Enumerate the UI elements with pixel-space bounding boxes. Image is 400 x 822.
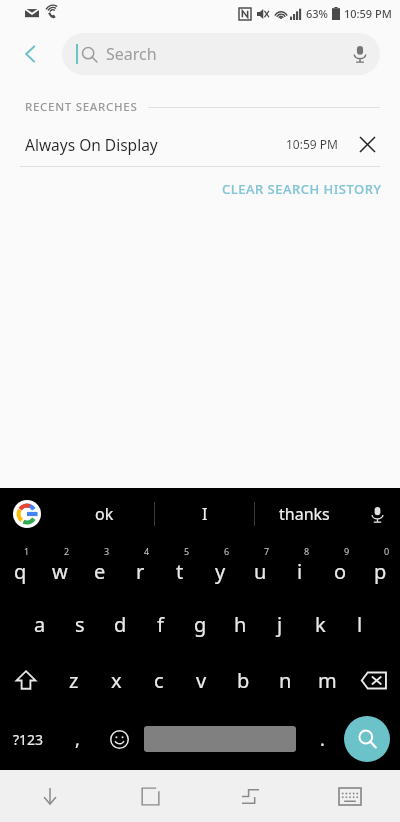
- button[interactable]: Emoji: [98, 708, 140, 770]
- staticText: 2: [64, 545, 70, 557]
- staticText: l: [357, 611, 363, 638]
- button[interactable]: 6: [200, 540, 240, 596]
- button[interactable]: Backspace: [348, 652, 400, 708]
- staticText: q: [14, 558, 27, 585]
- button[interactable]: l: [340, 596, 380, 652]
- button[interactable]: ?123: [0, 708, 56, 770]
- staticText: u: [254, 558, 267, 585]
- button[interactable]: Hide keyboard: [0, 770, 100, 822]
- button[interactable]: 4: [120, 540, 160, 596]
- button[interactable]: CLEAR SEARCH HISTORY: [204, 172, 400, 206]
- button[interactable]: 2: [40, 540, 80, 596]
- staticText: r: [136, 558, 145, 585]
- button[interactable]: Recents: [200, 770, 300, 822]
- button[interactable]: .: [300, 708, 344, 770]
- button[interactable]: h: [220, 596, 260, 652]
- button[interactable]: d: [100, 596, 140, 652]
- staticText: 8: [304, 545, 310, 557]
- button[interactable]: Google: [0, 488, 54, 540]
- button[interactable]: Voice input: [354, 488, 400, 540]
- staticText: RECENT SEARCHES: [25, 99, 138, 115]
- button[interactable]: Remove: [352, 129, 382, 159]
- button[interactable]: c: [138, 652, 180, 708]
- button[interactable]: 9: [320, 540, 360, 596]
- button[interactable]: Back: [0, 26, 62, 82]
- button[interactable]: 0: [360, 540, 400, 596]
- staticText: e: [94, 558, 106, 585]
- staticText: d: [114, 611, 127, 638]
- staticText: ,: [75, 727, 80, 752]
- staticText: i: [297, 558, 303, 585]
- staticText: 10:59 PM: [344, 6, 392, 21]
- staticText: v: [196, 667, 207, 694]
- button[interactable]: g: [180, 596, 220, 652]
- staticText: thanks: [279, 503, 330, 525]
- button[interactable]: b: [222, 652, 264, 708]
- staticText: o: [334, 558, 347, 585]
- button[interactable]: s: [60, 596, 100, 652]
- staticText: s: [75, 611, 85, 638]
- button[interactable]: ,: [56, 708, 98, 770]
- staticText: ?123: [13, 730, 44, 749]
- staticText: CLEAR SEARCH HISTORY: [222, 180, 382, 198]
- staticText: 63%: [306, 6, 328, 21]
- staticText: m: [318, 667, 337, 694]
- staticText: 6: [224, 545, 230, 557]
- staticText: x: [111, 667, 122, 694]
- staticText: k: [315, 611, 326, 638]
- staticText: I: [202, 503, 208, 525]
- button[interactable]: z: [52, 652, 95, 708]
- button[interactable]: 5: [160, 540, 200, 596]
- button[interactable]: x: [95, 652, 138, 708]
- staticText: Always On Display: [25, 134, 158, 155]
- button[interactable]: k: [300, 596, 340, 652]
- button[interactable]: Search: [344, 716, 390, 762]
- button[interactable]: thanks: [255, 488, 354, 540]
- staticText: g: [194, 611, 207, 638]
- staticText: z: [69, 667, 79, 694]
- staticText: b: [237, 667, 250, 694]
- staticText: 5: [184, 545, 190, 557]
- button[interactable]: f: [140, 596, 180, 652]
- staticText: c: [154, 667, 164, 694]
- staticText: 4: [144, 545, 150, 557]
- staticText: 3: [104, 545, 110, 557]
- staticText: t: [176, 558, 184, 585]
- button[interactable]: n: [264, 652, 306, 708]
- staticText: f: [157, 611, 164, 638]
- staticText: w: [52, 558, 68, 585]
- staticText: y: [215, 558, 226, 585]
- button[interactable]: Voice search: [340, 34, 380, 74]
- button[interactable]: 7: [240, 540, 280, 596]
- staticText: p: [374, 558, 387, 585]
- staticText: n: [279, 667, 292, 694]
- button[interactable]: ok: [54, 488, 154, 540]
- button[interactable]: j: [260, 596, 300, 652]
- button[interactable]: a: [20, 596, 60, 652]
- staticText: 0: [384, 545, 390, 557]
- button[interactable]: Keyboard settings: [300, 770, 400, 822]
- button[interactable]: Search: [62, 33, 380, 75]
- button[interactable]: 3: [80, 540, 120, 596]
- staticText: h: [234, 611, 247, 638]
- staticText: 7: [264, 545, 270, 557]
- staticText: 1: [24, 545, 30, 557]
- button[interactable]: m: [306, 652, 348, 708]
- button[interactable]: v: [180, 652, 222, 708]
- staticText: ok: [95, 503, 114, 525]
- button[interactable]: I: [155, 488, 254, 540]
- staticText: 10:59 PM: [286, 136, 338, 152]
- staticText: a: [34, 611, 46, 638]
- staticText: .: [320, 727, 325, 752]
- button[interactable]: Shift: [0, 652, 52, 708]
- staticText: 9: [344, 545, 350, 557]
- button[interactable]: 1: [0, 540, 40, 596]
- staticText: j: [277, 611, 283, 638]
- button[interactable]: 8: [280, 540, 320, 596]
- button[interactable]: Space: [144, 726, 296, 752]
- staticText: Search: [106, 43, 157, 65]
- button[interactable]: Home: [100, 770, 200, 822]
- button[interactable]: Always On Display: [0, 122, 400, 166]
